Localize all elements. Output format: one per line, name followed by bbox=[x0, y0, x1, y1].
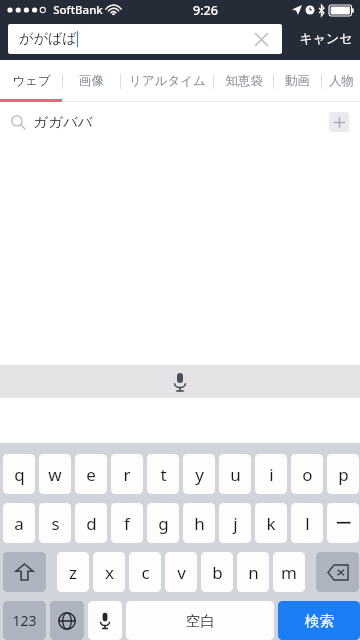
button[interactable]: ガガババ bbox=[0, 102, 360, 142]
button[interactable]: q bbox=[3, 454, 35, 494]
staticText: j bbox=[233, 512, 238, 535]
staticText: y bbox=[195, 463, 204, 486]
button[interactable]: Backspace bbox=[316, 552, 359, 592]
staticText: h bbox=[194, 512, 205, 535]
button[interactable]: v bbox=[165, 552, 197, 592]
button[interactable]: h bbox=[183, 503, 215, 543]
button[interactable]: a bbox=[3, 503, 35, 543]
staticText: n bbox=[248, 561, 259, 584]
button[interactable]: ががばば bbox=[8, 24, 282, 54]
staticText: t bbox=[160, 463, 167, 486]
staticText: 画像 bbox=[79, 73, 104, 89]
staticText: 人物 bbox=[329, 73, 354, 89]
staticText: 空白 bbox=[186, 612, 215, 630]
staticText: 動画 bbox=[285, 73, 310, 89]
button[interactable]: g bbox=[147, 503, 179, 543]
staticText: x bbox=[105, 561, 114, 584]
staticText: b bbox=[212, 561, 223, 584]
staticText: ー bbox=[335, 513, 352, 534]
button[interactable]: d bbox=[75, 503, 107, 543]
button[interactable]: 空白 bbox=[126, 601, 274, 640]
staticText: キャンセル bbox=[294, 30, 358, 48]
button[interactable]: x bbox=[93, 552, 125, 592]
button[interactable]: z bbox=[57, 552, 89, 592]
button[interactable]: 知恵袋 bbox=[214, 60, 273, 102]
button[interactable]: u bbox=[219, 454, 251, 494]
button[interactable]: ウェブ bbox=[0, 60, 62, 102]
staticText: e bbox=[86, 463, 96, 486]
staticText: r bbox=[123, 463, 131, 486]
button[interactable]: リアルタイム bbox=[121, 60, 213, 102]
staticText: g bbox=[158, 512, 169, 535]
staticText: SoftBank bbox=[53, 2, 103, 18]
button[interactable]: i bbox=[255, 454, 287, 494]
staticText: c bbox=[141, 561, 150, 584]
button[interactable]: キャンセル bbox=[292, 24, 360, 54]
button[interactable]: 人物 bbox=[322, 60, 360, 102]
staticText: o bbox=[302, 463, 313, 486]
button[interactable]: s bbox=[39, 503, 71, 543]
button[interactable]: Change keyboard language bbox=[50, 601, 84, 640]
button[interactable]: Voice search bbox=[0, 365, 360, 398]
button[interactable]: r bbox=[111, 454, 143, 494]
button[interactable]: e bbox=[75, 454, 107, 494]
button[interactable]: ー bbox=[327, 503, 359, 543]
button[interactable]: t bbox=[147, 454, 179, 494]
staticText: ががばば bbox=[19, 30, 77, 48]
button[interactable]: y bbox=[183, 454, 215, 494]
button[interactable]: m bbox=[273, 552, 305, 592]
staticText: u bbox=[230, 463, 241, 486]
staticText: z bbox=[69, 561, 77, 584]
button[interactable]: l bbox=[291, 503, 323, 543]
staticText: k bbox=[266, 512, 276, 535]
staticText: 9:26 bbox=[193, 2, 218, 19]
staticText: d bbox=[86, 512, 97, 535]
staticText: w bbox=[48, 463, 62, 486]
button[interactable]: f bbox=[111, 503, 143, 543]
staticText: ウェブ bbox=[12, 73, 51, 89]
staticText: p bbox=[338, 463, 349, 486]
button[interactable]: j bbox=[219, 503, 251, 543]
staticText: i bbox=[269, 463, 274, 486]
staticText: s bbox=[51, 512, 60, 535]
staticText: ガガババ bbox=[33, 113, 93, 131]
button[interactable]: 画像 bbox=[63, 60, 120, 102]
button[interactable]: Add suggestion to search bbox=[329, 112, 349, 132]
staticText: q bbox=[14, 463, 25, 486]
button[interactable]: 検索 bbox=[278, 601, 360, 640]
button[interactable]: Dictation bbox=[88, 601, 122, 640]
button[interactable]: p bbox=[327, 454, 359, 494]
button[interactable]: 動画 bbox=[274, 60, 321, 102]
staticText: v bbox=[177, 561, 186, 584]
staticText: 検索 bbox=[305, 612, 334, 630]
button[interactable]: w bbox=[39, 454, 71, 494]
button[interactable]: n bbox=[237, 552, 269, 592]
button[interactable]: c bbox=[129, 552, 161, 592]
staticText: 知恵袋 bbox=[225, 73, 263, 89]
staticText: 123 bbox=[12, 611, 37, 630]
staticText: リアルタイム bbox=[129, 73, 206, 89]
staticText: l bbox=[305, 512, 310, 535]
button[interactable]: Clear text bbox=[255, 33, 268, 46]
button[interactable]: k bbox=[255, 503, 287, 543]
staticText: m bbox=[281, 561, 297, 584]
button[interactable]: o bbox=[291, 454, 323, 494]
staticText: a bbox=[14, 512, 24, 535]
button[interactable]: b bbox=[201, 552, 233, 592]
button[interactable]: Shift bbox=[3, 552, 46, 592]
button[interactable]: 123 bbox=[3, 601, 46, 640]
staticText: f bbox=[124, 512, 130, 535]
